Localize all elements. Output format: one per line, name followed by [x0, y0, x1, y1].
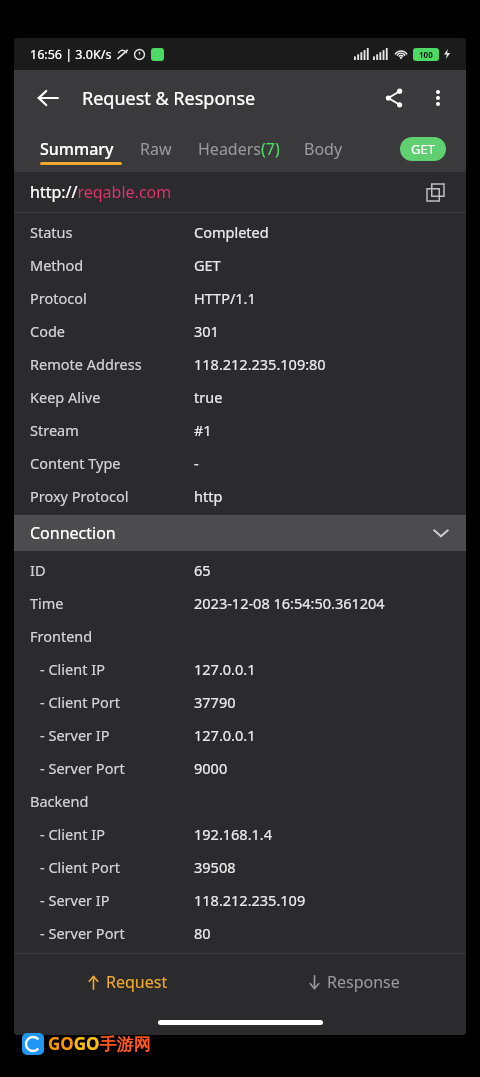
staticText: - Server IP	[40, 890, 110, 910]
button[interactable]: Copy URL	[418, 175, 452, 209]
staticText: -	[194, 453, 199, 473]
staticText: Response	[327, 971, 400, 993]
staticText: Frontend	[30, 626, 93, 646]
button[interactable]: Keep Alive	[14, 380, 466, 413]
staticText: 118.212.235.109:80	[194, 354, 326, 374]
staticText: - Server Port	[40, 758, 125, 778]
button[interactable]: http://reqable.com	[30, 181, 172, 203]
button[interactable]: Body	[304, 138, 343, 160]
staticText: - Client Port	[40, 857, 120, 877]
button[interactable]: - Client Port	[14, 850, 466, 883]
staticText: Request & Response	[82, 86, 256, 111]
button[interactable]: Code	[14, 314, 466, 347]
staticText: Protocol	[30, 288, 87, 308]
staticText: Summary	[40, 138, 114, 160]
button[interactable]: Raw	[140, 138, 172, 160]
button[interactable]: Response	[240, 954, 466, 1009]
button[interactable]: Connection	[14, 515, 466, 551]
staticText: 37790	[194, 692, 236, 712]
staticText: Completed	[194, 222, 269, 242]
button[interactable]: Frontend	[14, 619, 466, 652]
staticText: Request	[106, 971, 168, 993]
staticText: true	[194, 387, 223, 407]
staticText: 9000	[194, 758, 228, 778]
staticText: http	[194, 486, 223, 506]
staticText: 65	[194, 560, 211, 580]
button[interactable]: Share	[372, 76, 416, 120]
staticText: Time	[30, 593, 64, 613]
staticText: Keep Alive	[30, 387, 101, 407]
staticText: Content Type	[30, 453, 121, 473]
staticText: Proxy Protocol	[30, 486, 129, 506]
button[interactable]: Stream	[14, 413, 466, 446]
button[interactable]: More options	[416, 76, 460, 120]
staticText: Status	[30, 222, 73, 242]
button[interactable]: Content Type	[14, 446, 466, 479]
staticText: 192.168.1.4	[194, 824, 273, 844]
button[interactable]: Backend	[14, 784, 466, 817]
staticText: 39508	[194, 857, 236, 877]
staticText: 16:56 | 3.0K/s	[30, 46, 112, 63]
staticText: 127.0.0.1	[194, 725, 256, 745]
button[interactable]: Time	[14, 586, 466, 619]
staticText: Connection	[30, 522, 116, 544]
button[interactable]: Method	[14, 248, 466, 281]
button[interactable]: GET	[400, 137, 446, 161]
staticText: GET	[411, 140, 435, 158]
staticText: - Server Port	[40, 923, 125, 943]
staticText: - Client IP	[40, 659, 105, 679]
button[interactable]: - Server IP	[14, 883, 466, 916]
button[interactable]: - Server Port	[14, 751, 466, 784]
staticText: Code	[30, 321, 66, 341]
button[interactable]: ID	[14, 553, 466, 586]
button[interactable]: - Server Port	[14, 916, 466, 949]
staticText: 118.212.235.109	[194, 890, 306, 910]
button[interactable]: Proxy Protocol	[14, 479, 466, 512]
staticText: HTTP/1.1	[194, 288, 256, 308]
staticText: Backend	[30, 791, 89, 811]
staticText: GET	[194, 255, 221, 275]
staticText: #1	[194, 420, 212, 440]
button[interactable]: - Client Port	[14, 685, 466, 718]
staticText: 100	[419, 49, 433, 60]
staticText: - Server IP	[40, 725, 110, 745]
staticText: Raw	[140, 138, 172, 160]
staticText: Headers(7)	[198, 138, 280, 160]
staticText: 301	[194, 321, 219, 341]
staticText: ID	[30, 560, 46, 580]
staticText: - Client IP	[40, 824, 105, 844]
button[interactable]: Back	[26, 76, 70, 120]
staticText: - Client Port	[40, 692, 120, 712]
staticText: 80	[194, 923, 211, 943]
button[interactable]: - Client IP	[14, 652, 466, 685]
staticText: Body	[304, 138, 343, 160]
button[interactable]: Request	[14, 954, 240, 1009]
staticText: Stream	[30, 420, 79, 440]
staticText: GOGO手游网	[48, 1032, 151, 1055]
staticText: 2023-12-08 16:54:50.361204	[194, 593, 385, 613]
staticText: 127.0.0.1	[194, 659, 256, 679]
button[interactable]: Protocol	[14, 281, 466, 314]
staticText: Remote Address	[30, 354, 142, 374]
button[interactable]: Headers(7)	[198, 138, 280, 160]
staticText: Method	[30, 255, 84, 275]
button[interactable]: Summary	[40, 138, 114, 160]
button[interactable]: Remote Address	[14, 347, 466, 380]
button[interactable]: - Server IP	[14, 718, 466, 751]
button[interactable]: Status	[14, 215, 466, 248]
button[interactable]: - Client IP	[14, 817, 466, 850]
